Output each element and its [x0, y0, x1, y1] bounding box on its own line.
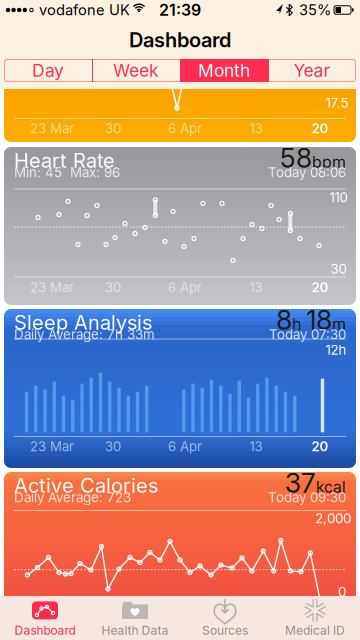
staticText: 6 Apr [168, 439, 202, 454]
staticText: 20 [311, 121, 328, 136]
staticText: 20 [311, 439, 328, 454]
button[interactable]: Sleep Analysis [4, 309, 356, 468]
staticText: Sources [202, 623, 248, 638]
staticText: Today 07:30 [269, 327, 346, 342]
staticText: 30 [330, 261, 346, 277]
staticText: Week [113, 60, 159, 81]
staticText: Sleep Analysis [14, 311, 152, 334]
staticText: 30 [105, 439, 121, 454]
staticText: 8h 18m [276, 304, 346, 336]
staticText: 2,000 [315, 511, 351, 526]
staticText: Today 08:06 [268, 165, 346, 180]
staticText: Daily Average: 7h 33m [14, 327, 155, 342]
staticText: 6 Apr [168, 121, 202, 136]
button[interactable]: Health Data [90, 596, 180, 640]
staticText: 13 [249, 121, 262, 136]
staticText: Year [293, 60, 330, 81]
button[interactable]: Sources [180, 596, 270, 640]
button[interactable]: Active Calories [4, 472, 356, 640]
staticText: 23 Mar [30, 439, 74, 454]
button[interactable]: Heart Rate [4, 147, 356, 305]
staticText: Min: 45 Max: 96 [14, 165, 120, 180]
button[interactable]: 17.5 [4, 89, 356, 142]
staticText: 23 Mar [30, 280, 74, 295]
staticText: 17.5 [325, 95, 348, 111]
button[interactable]: Month [180, 59, 268, 82]
staticText: 30 [105, 280, 121, 295]
staticText: Health Data [101, 623, 168, 638]
staticText: 37kcal [285, 467, 346, 499]
staticText: 6 Apr [168, 280, 202, 295]
staticText: 20 [311, 280, 328, 295]
staticText: 13 [249, 280, 262, 295]
button[interactable]: Week [92, 59, 180, 82]
staticText: 0 [338, 584, 346, 600]
button[interactable]: Day [4, 59, 92, 82]
button[interactable]: Dashboard [0, 596, 90, 640]
staticText: 13 [249, 439, 262, 454]
staticText: 12h [325, 342, 346, 358]
staticText: Medical ID [285, 623, 345, 638]
staticText: Daily Average: 723 [14, 490, 131, 505]
staticText: 110 [329, 190, 347, 205]
staticText: Active Calories [14, 474, 158, 497]
staticText: Dashboard [129, 28, 231, 52]
staticText: 21:39 [159, 1, 201, 19]
button[interactable]: Year [268, 59, 356, 82]
staticText: Month [198, 60, 250, 81]
staticText: 35% [299, 1, 331, 19]
staticText: 23 Mar [30, 121, 74, 136]
staticText: 58bpm [280, 142, 346, 174]
button[interactable]: Medical ID [270, 596, 360, 640]
staticText: Dashboard [14, 623, 75, 638]
staticText: Heart Rate [14, 149, 115, 172]
staticText: Today 09:30 [268, 490, 346, 505]
staticText: vodafone UK [39, 1, 130, 19]
staticText: 30 [105, 121, 121, 136]
staticText: Day [32, 60, 64, 81]
